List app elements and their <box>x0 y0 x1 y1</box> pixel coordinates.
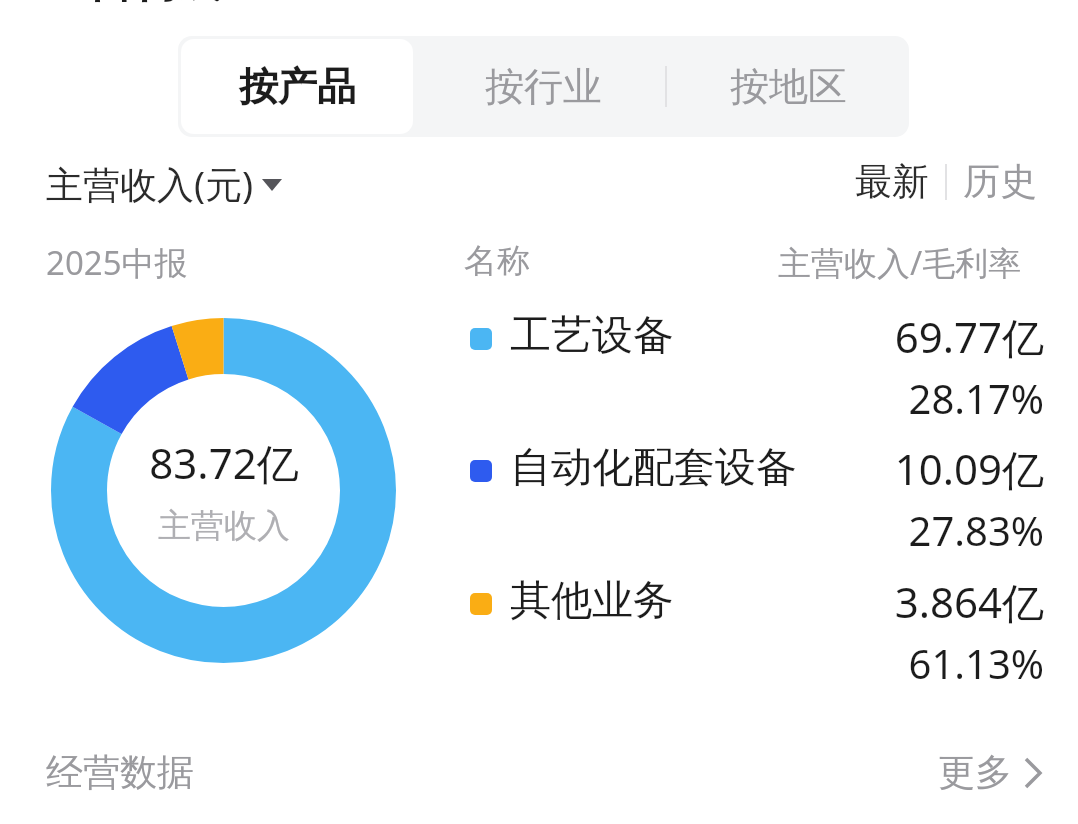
button[interactable]: 按产品 <box>181 39 413 134</box>
staticText: 61.13% <box>908 636 1044 690</box>
staticText: 28.17% <box>908 371 1044 425</box>
staticText: 69.77亿 <box>894 308 1044 365</box>
staticText: 27.83% <box>908 503 1044 557</box>
staticText: 更多 <box>938 749 1012 796</box>
staticText: 经营数据 <box>46 749 194 796</box>
staticText: 按产品 <box>239 62 356 111</box>
button[interactable]: 主营构成 <box>44 0 220 9</box>
staticText: 名称 <box>464 240 530 282</box>
button[interactable]: 工艺设备 <box>455 305 1045 430</box>
staticText: 按行业 <box>485 62 602 111</box>
button[interactable]: 经营数据 <box>0 730 1078 814</box>
button[interactable]: 按地区 <box>670 39 906 134</box>
staticText: 其他业务 <box>510 575 674 627</box>
button[interactable]: 按行业 <box>423 39 663 134</box>
button[interactable]: 其他业务 <box>455 570 1045 695</box>
staticText: 主营构成 <box>44 0 220 9</box>
staticText: 最新 <box>855 158 929 205</box>
staticText: 按地区 <box>730 62 847 111</box>
staticText: 3.864亿 <box>894 573 1044 630</box>
staticText: 自动化配套设备 <box>510 442 797 494</box>
button[interactable]: 自动化配套设备 <box>455 437 1045 562</box>
button[interactable]: 主营收入(元) <box>46 158 282 209</box>
staticText: 主营收入/毛利率 <box>778 240 1022 285</box>
staticText: 2025中报 <box>46 240 188 285</box>
button[interactable]: 最新 <box>855 158 929 205</box>
staticText: 83.72亿 <box>149 434 299 491</box>
staticText: 10.09亿 <box>894 440 1044 497</box>
staticText: 历史 <box>963 158 1037 205</box>
staticText: 主营收入 <box>158 505 290 547</box>
button[interactable]: 历史 <box>963 158 1037 205</box>
staticText: 主营收入(元) <box>46 158 254 209</box>
staticText: 工艺设备 <box>510 310 674 362</box>
